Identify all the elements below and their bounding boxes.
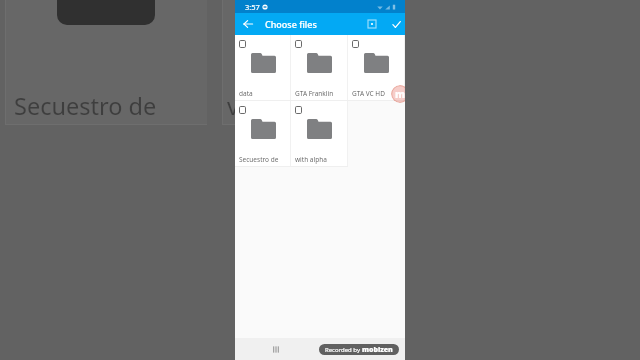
staticText: with alpha: [295, 155, 327, 164]
staticText: data: [239, 89, 253, 98]
button[interactable]: GTA VC HD: [348, 35, 405, 101]
staticText: m: [395, 87, 405, 101]
staticText: 3:57: [245, 2, 260, 12]
staticText: Choose files: [265, 18, 317, 30]
staticText: GTA Franklin: [295, 89, 334, 98]
button[interactable]: Mobizen recorder: [391, 85, 405, 103]
staticText: GTA VC HD: [352, 89, 385, 98]
button[interactable]: Confirm selection: [388, 16, 404, 32]
button[interactable]: GTA Franklin: [291, 35, 348, 101]
staticText: Secuestro de: [239, 155, 279, 164]
button[interactable]: Secuestro de: [235, 101, 291, 167]
staticText: Recorded by: [325, 346, 362, 354]
staticText: v: [227, 90, 239, 122]
staticText: Secuestro de: [14, 90, 157, 122]
button[interactable]: data: [235, 35, 291, 101]
button[interactable]: Back: [240, 16, 256, 32]
button[interactable]: Recent apps: [269, 342, 283, 356]
button[interactable]: with alpha: [291, 101, 348, 167]
staticText: mobizen: [362, 345, 393, 355]
button[interactable]: View options: [364, 16, 380, 32]
